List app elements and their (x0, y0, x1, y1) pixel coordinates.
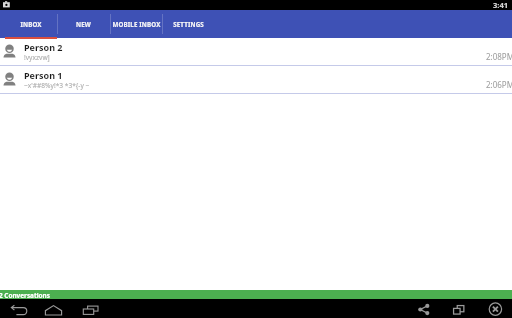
button[interactable]: SETTINGS (162, 10, 215, 38)
button[interactable]: Back (9, 301, 29, 318)
staticText: 2:08PM (486, 51, 512, 62)
button[interactable]: Home (43, 301, 64, 318)
button[interactable]: Close (486, 300, 506, 318)
button[interactable]: Recent apps (81, 301, 101, 318)
staticText: !vyxzvw] (24, 53, 50, 62)
button[interactable]: INBOX (5, 10, 57, 38)
button[interactable]: MOBILE INBOX (110, 10, 162, 38)
button[interactable]: Switch window (450, 300, 471, 318)
staticText: Person 2 (24, 41, 63, 53)
staticText: INBOX (20, 20, 42, 28)
staticText: 3:41 (493, 0, 509, 10)
staticText: 2 Conversations (0, 291, 50, 300)
button[interactable]: Person 2 (0, 38, 512, 66)
staticText: NEW (76, 20, 91, 28)
staticText: Person 1 (24, 69, 63, 81)
staticText: ~x'##8%y!*3 *3*{-y ~ (24, 81, 90, 90)
button[interactable]: Share (415, 300, 435, 318)
staticText: SETTINGS (173, 20, 204, 28)
staticText: MOBILE INBOX (112, 20, 161, 28)
button[interactable]: NEW (57, 10, 110, 38)
staticText: 2:06PM (486, 79, 512, 90)
button[interactable]: Person 1 (0, 66, 512, 94)
